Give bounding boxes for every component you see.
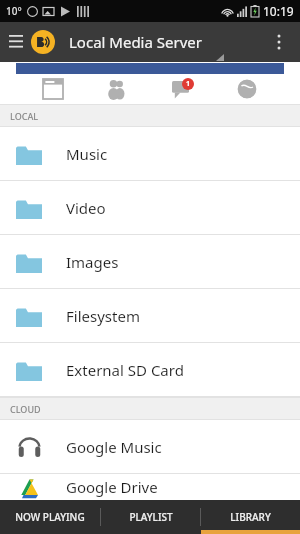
staticText: 10° bbox=[6, 4, 22, 18]
button[interactable]: Music bbox=[0, 127, 300, 181]
button[interactable]: Images bbox=[0, 235, 300, 289]
staticText: NOW PLAYING bbox=[15, 510, 85, 524]
button[interactable]: Video bbox=[0, 181, 300, 235]
staticText: Music bbox=[66, 144, 108, 164]
staticText: 1 bbox=[186, 79, 191, 89]
staticText: Local Media Server bbox=[69, 32, 202, 52]
button[interactable]: Google Music bbox=[0, 420, 300, 474]
button[interactable]: External SD Card bbox=[0, 343, 300, 397]
staticText: External SD Card bbox=[66, 360, 184, 380]
button[interactable]: Filesystem bbox=[0, 289, 300, 343]
button[interactable]: NOW PLAYING bbox=[0, 500, 100, 534]
staticText: LIBRARY bbox=[230, 510, 271, 524]
staticText: LOCAL bbox=[10, 110, 39, 122]
button[interactable]: Google Drive bbox=[0, 474, 300, 500]
staticText: Video bbox=[66, 198, 106, 218]
staticText: 10:19 bbox=[263, 3, 294, 19]
button[interactable]: 1 bbox=[0, 62, 300, 104]
staticText: CLOUD bbox=[10, 403, 41, 415]
button[interactable]: LIBRARY bbox=[201, 500, 300, 534]
button[interactable]: More options bbox=[264, 27, 294, 57]
button[interactable]: Open navigation drawer bbox=[3, 29, 29, 55]
staticText: Google Music bbox=[66, 437, 162, 457]
staticText: PLAYLIST bbox=[129, 510, 173, 524]
button[interactable]: PLAYLIST bbox=[101, 500, 200, 534]
staticText: Filesystem bbox=[66, 306, 140, 326]
staticText: Images bbox=[66, 252, 119, 272]
staticText: Google Drive bbox=[66, 477, 158, 497]
